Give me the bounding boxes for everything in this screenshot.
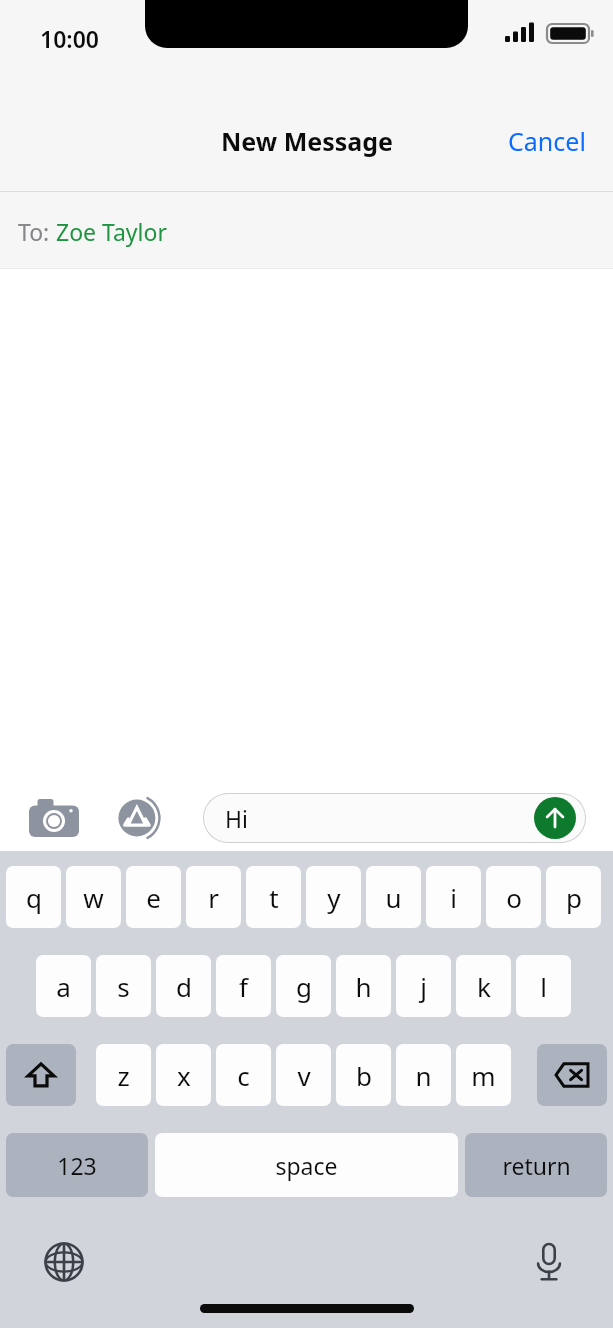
button[interactable]: Hi xyxy=(203,793,586,843)
staticText: s xyxy=(117,969,130,1004)
button[interactable]: space xyxy=(155,1133,458,1197)
button[interactable]: k xyxy=(456,955,511,1017)
staticText: r xyxy=(208,880,219,915)
button[interactable]: o xyxy=(486,866,541,928)
button[interactable]: To: xyxy=(0,192,613,268)
button[interactable]: l xyxy=(516,955,571,1017)
staticText: z xyxy=(117,1058,130,1093)
button[interactable] xyxy=(537,1044,607,1106)
staticText: h xyxy=(355,969,372,1004)
button[interactable]: a xyxy=(36,955,91,1017)
button[interactable]: w xyxy=(66,866,121,928)
button[interactable]: q xyxy=(6,866,61,928)
staticText: p xyxy=(566,880,582,915)
staticText: g xyxy=(296,969,312,1004)
staticText: i xyxy=(450,880,457,915)
button[interactable]: z xyxy=(96,1044,151,1106)
staticText: New Message xyxy=(221,124,393,158)
button[interactable]: g xyxy=(276,955,331,1017)
button[interactable]: m xyxy=(456,1044,511,1106)
staticText: u xyxy=(385,880,402,915)
button[interactable]: s xyxy=(96,955,151,1017)
staticText: To: xyxy=(18,216,56,247)
staticText: 123 xyxy=(57,1150,97,1181)
staticText: l xyxy=(540,969,547,1004)
button[interactable]: d xyxy=(156,955,211,1017)
staticText: y xyxy=(327,880,341,915)
staticText: q xyxy=(26,880,42,915)
button[interactable]: Switch keyboard xyxy=(34,1232,94,1292)
button[interactable]: u xyxy=(366,866,421,928)
button[interactable]: Cancel xyxy=(481,114,613,168)
staticText: space xyxy=(275,1150,338,1181)
staticText: d xyxy=(176,969,192,1004)
staticText: e xyxy=(146,880,161,915)
staticText: t xyxy=(269,880,279,915)
button[interactable]: n xyxy=(396,1044,451,1106)
button[interactable]: p xyxy=(546,866,601,928)
staticText: j xyxy=(420,969,427,1004)
button[interactable]: Dictate xyxy=(519,1232,579,1292)
button[interactable]: Send xyxy=(534,797,576,839)
staticText: k xyxy=(477,969,491,1004)
button[interactable]: x xyxy=(156,1044,211,1106)
button[interactable]: 123 xyxy=(6,1133,148,1197)
button[interactable]: return xyxy=(465,1133,607,1197)
button[interactable]: Camera xyxy=(22,795,86,841)
staticText: 10:00 xyxy=(40,23,99,54)
staticText: f xyxy=(239,969,248,1004)
button[interactable]: App Store xyxy=(110,795,170,841)
button[interactable]: b xyxy=(336,1044,391,1106)
staticText: n xyxy=(415,1058,432,1093)
button[interactable]: j xyxy=(396,955,451,1017)
staticText: Cancel xyxy=(508,124,586,158)
button[interactable] xyxy=(6,1044,76,1106)
button[interactable]: c xyxy=(216,1044,271,1106)
staticText: o xyxy=(506,880,522,915)
staticText: Hi xyxy=(225,803,248,834)
button[interactable]: e xyxy=(126,866,181,928)
button[interactable]: h xyxy=(336,955,391,1017)
staticText: v xyxy=(297,1058,311,1093)
button[interactable]: t xyxy=(246,866,301,928)
button[interactable]: v xyxy=(276,1044,331,1106)
staticText: Zoe Taylor xyxy=(56,216,167,247)
button[interactable]: y xyxy=(306,866,361,928)
button[interactable]: i xyxy=(426,866,481,928)
staticText: x xyxy=(177,1058,191,1093)
staticText: return xyxy=(502,1150,571,1181)
staticText: w xyxy=(83,880,104,915)
staticText: a xyxy=(56,969,71,1004)
staticText: c xyxy=(237,1058,250,1093)
staticText: b xyxy=(356,1058,372,1093)
button[interactable]: f xyxy=(216,955,271,1017)
button[interactable]: r xyxy=(186,866,241,928)
staticText: m xyxy=(471,1058,496,1093)
